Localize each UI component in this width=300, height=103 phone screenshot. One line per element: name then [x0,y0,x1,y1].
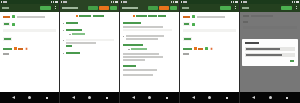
button[interactable]: Delete [25,47,28,50]
button[interactable]: Recent apps [223,94,230,101]
button[interactable] [3,37,12,41]
button[interactable]: Edit [192,23,195,26]
button[interactable]: Send [110,6,117,10]
button[interactable]: Recent apps [103,94,110,101]
button[interactable]: Edit [12,23,15,26]
button[interactable]: Delete [210,47,213,50]
button[interactable]: Save [88,6,98,10]
button[interactable]: Reset [159,6,169,10]
button[interactable]: Recent apps [163,94,170,101]
button[interactable] [183,37,192,41]
button[interactable]: Save [148,6,158,10]
button[interactable]: Home [86,94,93,101]
button[interactable]: Confirm [205,47,208,50]
button[interactable]: Recent apps [43,94,50,101]
button[interactable]: Home [267,94,274,101]
button[interactable]: Back [10,94,17,101]
button[interactable]: More options [53,6,57,10]
button[interactable]: Reset [99,6,109,10]
button[interactable]: More options [294,6,298,10]
button[interactable] [3,22,10,26]
button[interactable]: Send [170,6,177,10]
button[interactable] [63,29,82,31]
button[interactable]: Add [12,15,15,18]
button[interactable] [63,22,78,24]
button[interactable]: Home [146,94,153,101]
button[interactable] [245,47,295,51]
button[interactable]: Primary action [220,6,231,10]
button[interactable] [63,52,80,54]
button[interactable]: More options [233,6,237,10]
button[interactable]: Back [70,94,77,101]
button[interactable]: Back [250,94,257,101]
button[interactable] [245,53,295,57]
button[interactable] [289,59,295,63]
button[interactable]: Back [190,94,197,101]
button[interactable]: Home [206,94,213,101]
button[interactable]: Recent apps [283,94,290,101]
button[interactable]: Back [130,94,137,101]
button[interactable]: Primary action [40,6,51,10]
button[interactable] [183,22,190,26]
button[interactable]: Add [192,15,195,18]
button[interactable]: Primary action [281,6,292,10]
button[interactable]: Home [26,94,33,101]
